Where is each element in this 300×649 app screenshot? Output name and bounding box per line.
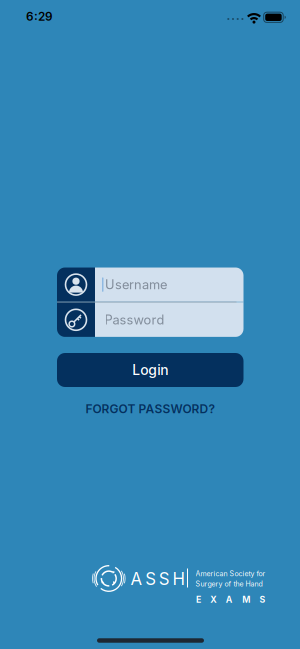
staticText: Surgery of the Hand (195, 579, 262, 588)
staticText: American Society for (195, 569, 265, 578)
staticText: 6:29 (26, 9, 53, 24)
staticText: FORGOT PASSWORD? (85, 402, 215, 416)
staticText: Username (105, 277, 167, 292)
staticText: Password (104, 312, 164, 328)
button[interactable]: Username (57, 267, 243, 302)
staticText: X (210, 594, 216, 605)
staticText: S (145, 569, 156, 589)
staticText: A (131, 569, 143, 589)
staticText: H (172, 569, 184, 589)
button[interactable]: Password (57, 303, 243, 337)
staticText: M (242, 594, 250, 605)
staticText: Login (132, 362, 168, 378)
staticText: A (226, 594, 233, 605)
staticText: S (159, 569, 170, 589)
button[interactable]: FORGOT PASSWORD? (85, 402, 215, 416)
staticText: S (260, 594, 266, 605)
button[interactable]: Login (57, 353, 243, 387)
staticText: E (196, 594, 201, 605)
